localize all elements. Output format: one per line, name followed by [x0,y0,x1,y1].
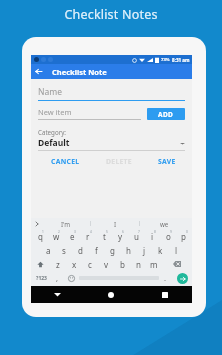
button[interactable]: CANCEL [48,155,83,168]
button[interactable]: s [56,243,72,257]
staticText: CANCEL [51,157,80,166]
staticText: 8 [154,230,156,234]
button[interactable]: , [51,271,64,285]
button[interactable]: 4 [80,229,96,243]
button[interactable]: 0 [176,229,191,243]
staticText: l [175,245,178,256]
staticText: Name [38,86,62,98]
staticText: c [88,259,92,270]
button[interactable]: k [152,243,168,257]
button[interactable]: New item [38,107,141,120]
button[interactable]: l [168,243,184,257]
staticText: e [70,231,75,242]
staticText: q [38,231,43,242]
staticText: z [56,259,60,270]
staticText: Checklist Note [52,67,107,77]
button[interactable]: Name [38,86,185,101]
button[interactable]: Recents [138,286,192,303]
button[interactable]: SAVE [155,155,179,168]
button[interactable]: h [120,243,136,257]
button[interactable]: f [88,243,104,257]
staticText: I'm [61,220,71,228]
staticText: 9 [170,230,172,234]
button[interactable]: c [82,257,98,271]
button[interactable]: 3 [64,229,80,243]
button[interactable]: ADD [147,108,185,120]
button[interactable]: Back [31,64,46,79]
staticText: u [134,231,139,242]
button[interactable]: Back [31,286,84,303]
button[interactable]: b [114,257,130,271]
staticText: ADD [158,110,174,119]
staticText: x [72,259,77,270]
button[interactable]: n [130,257,146,271]
staticText: . [164,273,167,283]
staticText: j [143,245,146,256]
button[interactable]: Enter [172,271,192,285]
staticText: s [62,245,66,256]
staticText: , [56,273,59,283]
staticText: y [118,231,123,242]
staticText: SAVE [158,157,176,166]
staticText: b [120,259,125,270]
staticText: 6 [122,230,124,234]
button[interactable]: m [146,257,162,271]
staticText: f [95,245,98,256]
staticText: New item [38,107,72,117]
button[interactable]: 9 [160,229,176,243]
button[interactable]: 1 [32,229,48,243]
staticText: a [46,245,51,256]
staticText: w [53,231,60,242]
button[interactable]: I [91,218,139,229]
staticText: 73% [161,57,170,63]
staticText: ?123 [36,275,47,282]
button[interactable]: x [66,257,82,271]
button[interactable]: Default [38,137,185,149]
staticText: I [114,220,117,228]
staticText: m [150,259,158,270]
staticText: 8:31 am [172,57,190,63]
button[interactable]: Backspace [162,257,192,271]
staticText: Category: [38,128,67,136]
button[interactable]: 8 [144,229,160,243]
button[interactable]: ?123 [31,271,51,285]
staticText: g [110,245,115,256]
staticText: k [158,245,163,256]
staticText: Checklist Notes [0,6,222,23]
button[interactable]: DELETE [103,155,135,168]
button[interactable]: 5 [96,229,112,243]
button[interactable]: j [136,243,152,257]
button[interactable]: g [104,243,120,257]
staticText: 1 [42,230,44,234]
button[interactable]: . [159,271,172,285]
staticText: n [136,259,141,270]
staticText: h [126,245,131,256]
button[interactable]: d [72,243,88,257]
button[interactable]: we [140,218,188,229]
staticText: o [166,231,171,242]
button[interactable]: More suggestions [31,218,42,229]
button[interactable]: 2 [48,229,64,243]
button[interactable]: 7 [128,229,144,243]
staticText: p [181,231,186,242]
button[interactable]: Shift [31,257,50,271]
staticText: 4 [90,230,92,234]
staticText: i [151,231,154,242]
button[interactable]: a [40,243,56,257]
button[interactable]: z [50,257,66,271]
button[interactable]: Space [79,274,159,282]
staticText: Default [38,137,70,149]
staticText: d [78,245,83,256]
button[interactable]: I'm [42,218,90,229]
staticText: 0 [186,230,188,234]
staticText: we [160,220,169,228]
staticText: 3 [74,230,76,234]
staticText: 5 [106,230,108,234]
staticText: r [86,231,90,242]
button[interactable]: Emoji [64,271,79,285]
button[interactable]: 6 [112,229,128,243]
button[interactable]: Home [84,286,138,303]
button[interactable]: v [98,257,114,271]
staticText: v [104,259,109,270]
staticText: DELETE [106,157,132,166]
